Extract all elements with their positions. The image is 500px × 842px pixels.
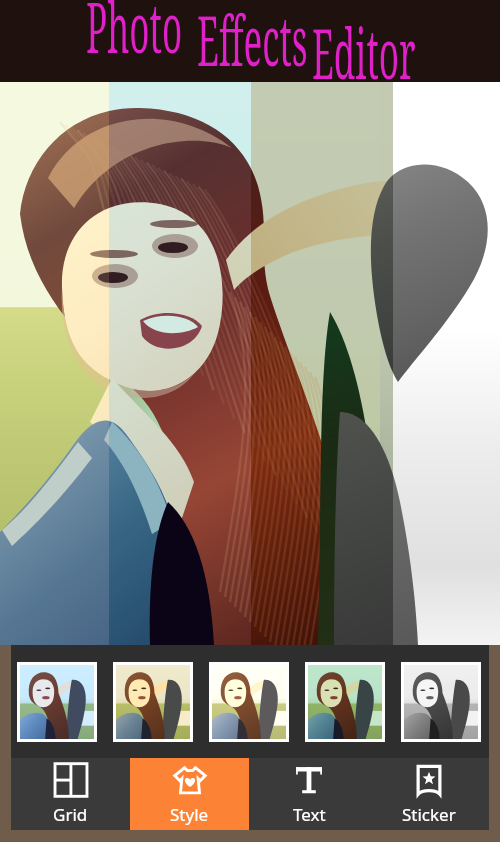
button[interactable]: Grid: [11, 758, 130, 830]
button[interactable]: Sticker: [369, 758, 489, 830]
button[interactable]: Text: [249, 758, 369, 830]
staticText: Style: [170, 803, 209, 826]
staticText: Sticker: [402, 803, 456, 826]
staticText: Text: [293, 803, 326, 826]
staticText: Photo: [86, 0, 182, 60]
button[interactable]: [308, 665, 382, 739]
button[interactable]: Style: [130, 758, 249, 830]
button[interactable]: [20, 665, 94, 739]
staticText: Editor: [312, 4, 415, 86]
staticText: Effects: [197, 0, 308, 73]
staticText: Grid: [53, 803, 88, 826]
button[interactable]: [404, 665, 478, 739]
button[interactable]: [116, 665, 190, 739]
button[interactable]: [212, 665, 286, 739]
